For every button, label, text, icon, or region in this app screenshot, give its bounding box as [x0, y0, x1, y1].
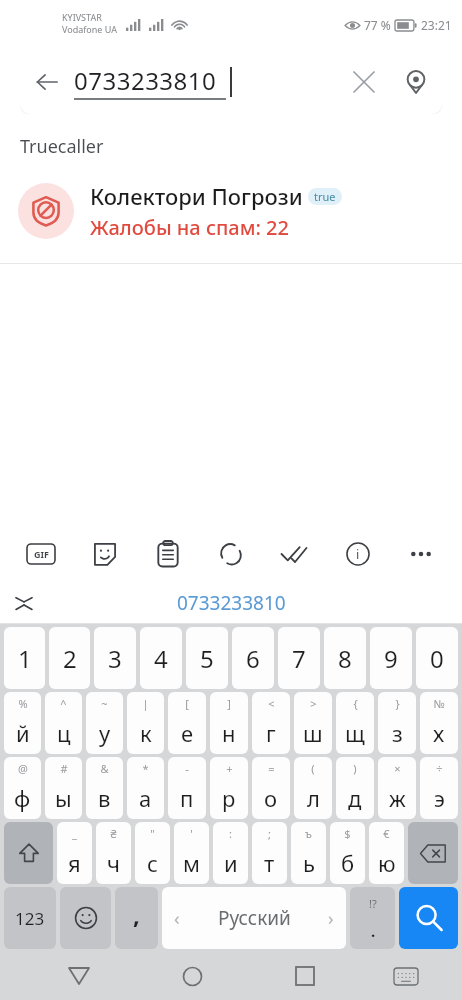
button[interactable]: Recents: [283, 954, 327, 998]
button[interactable]: 3: [94, 627, 136, 689]
button[interactable]: =: [252, 757, 290, 819]
button[interactable]: >: [294, 692, 332, 754]
button[interactable]: &: [86, 757, 123, 819]
button[interactable]: 8: [324, 627, 366, 689]
button[interactable]: ъ: [291, 822, 326, 884]
staticText: ^: [60, 696, 67, 711]
staticText: ): [353, 761, 357, 776]
button[interactable]: Shift: [4, 822, 53, 884]
button[interactable]: <: [252, 692, 290, 754]
button[interactable]: Translate: [209, 532, 253, 576]
button[interactable]: Back: [20, 55, 74, 109]
button[interactable]: 1: [4, 627, 45, 689]
staticText: в: [98, 783, 111, 813]
button[interactable]: ;: [252, 822, 287, 884]
staticText: 0733233810: [177, 590, 286, 616]
button[interactable]: Hide keyboard: [384, 954, 428, 998]
staticText: [: [185, 696, 189, 711]
button[interactable]: Колектори Погрози: [0, 181, 462, 241]
button[interactable]: Edit: [272, 532, 316, 576]
staticText: ~: [101, 696, 108, 711]
button[interactable]: 7: [278, 627, 320, 689]
staticText: $: [344, 826, 351, 841]
staticText: ›: [328, 906, 334, 931]
button[interactable]: ~: [86, 692, 123, 754]
button[interactable]: Home: [170, 954, 214, 998]
button[interactable]: Search: [399, 887, 458, 949]
button[interactable]: @: [4, 757, 41, 819]
button[interactable]: ×: [378, 757, 416, 819]
button[interactable]: {: [336, 692, 374, 754]
button[interactable]: -: [168, 757, 206, 819]
staticText: ь: [303, 848, 315, 878]
staticText: #: [60, 761, 68, 776]
staticText: *: [142, 761, 149, 776]
staticText: =: [268, 761, 275, 776]
button[interactable]: Backspace: [408, 822, 458, 884]
button[interactable]: 9: [370, 627, 412, 689]
button[interactable]: 5: [186, 627, 228, 689]
button[interactable]: €: [369, 822, 404, 884]
staticText: ю: [378, 848, 396, 878]
staticText: true: [314, 189, 336, 204]
staticText: н: [222, 718, 236, 748]
staticText: <: [268, 696, 275, 711]
button[interactable]: Back: [57, 954, 101, 998]
button[interactable]: *: [127, 757, 164, 819]
staticText: ч: [107, 848, 120, 878]
button[interactable]: [: [168, 692, 206, 754]
button[interactable]: Stickers: [83, 532, 127, 576]
button[interactable]: Info: [336, 532, 380, 576]
staticText: }: [395, 696, 400, 711]
button[interactable]: GIF: [19, 532, 63, 576]
button[interactable]: Clear: [338, 56, 390, 108]
staticText: с: [147, 848, 158, 878]
button[interactable]: Clipboard: [146, 532, 190, 576]
button[interactable]: ,: [115, 887, 158, 949]
button[interactable]: :: [213, 822, 248, 884]
staticText: ₴: [110, 826, 117, 841]
staticText: ы: [55, 783, 72, 813]
button[interactable]: ÷: [420, 757, 458, 819]
button[interactable]: Numbers: [4, 887, 56, 949]
staticText: я: [68, 848, 81, 878]
button[interactable]: ": [135, 822, 170, 884]
button[interactable]: ): [336, 757, 374, 819]
button[interactable]: ₴: [96, 822, 131, 884]
staticText: 23:21: [421, 17, 452, 33]
staticText: >: [310, 696, 317, 711]
button[interactable]: 2: [49, 627, 90, 689]
staticText: .: [371, 921, 376, 941]
button[interactable]: +: [210, 757, 248, 819]
button[interactable]: _: [57, 822, 92, 884]
button[interactable]: Punctuation: [350, 887, 395, 949]
staticText: !?: [369, 896, 377, 911]
button[interactable]: ]: [210, 692, 248, 754]
button[interactable]: 0733233810: [165, 586, 298, 620]
button[interactable]: 0: [416, 627, 458, 689]
button[interactable]: $: [330, 822, 365, 884]
staticText: %: [18, 696, 28, 711]
button[interactable]: ^: [45, 692, 82, 754]
button[interactable]: Collapse: [10, 589, 38, 617]
button[interactable]: ‹: [162, 887, 346, 949]
button[interactable]: 4: [140, 627, 182, 689]
button[interactable]: Location: [390, 56, 442, 108]
button[interactable]: Emoji: [60, 887, 111, 949]
button[interactable]: %: [4, 692, 41, 754]
button[interactable]: №: [420, 692, 458, 754]
staticText: щ: [345, 718, 365, 748]
staticText: у: [99, 718, 111, 748]
staticText: 0733233810: [74, 64, 217, 97]
staticText: :: [229, 826, 232, 841]
button[interactable]: (: [294, 757, 332, 819]
button[interactable]: #: [45, 757, 82, 819]
staticText: ,: [133, 898, 140, 931]
button[interactable]: 6: [232, 627, 274, 689]
button[interactable]: }: [378, 692, 416, 754]
button[interactable]: ': [174, 822, 209, 884]
button[interactable]: More: [399, 532, 443, 576]
button[interactable]: |: [127, 692, 164, 754]
staticText: +: [226, 761, 233, 776]
staticText: ÷: [436, 761, 443, 776]
